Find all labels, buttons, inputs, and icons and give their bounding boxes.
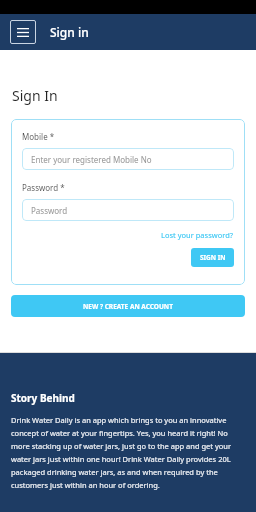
staticText: Enter your registered Mobile No bbox=[31, 154, 152, 165]
button[interactable]: Password bbox=[22, 199, 234, 221]
button[interactable]: Lost your password? bbox=[161, 230, 234, 240]
staticText: Drink Water Daily is an app which brings… bbox=[11, 415, 245, 490]
staticText: NEW ? CREATE AN ACCOUNT bbox=[83, 302, 173, 311]
button[interactable]: Enter your registered Mobile No bbox=[22, 148, 234, 170]
button[interactable]: SIGN IN bbox=[191, 248, 234, 267]
staticText: Sign in bbox=[50, 24, 89, 40]
staticText: Story Behind bbox=[11, 391, 75, 405]
staticText: Password * bbox=[22, 182, 65, 193]
staticText: Password bbox=[31, 205, 68, 216]
staticText: SIGN IN bbox=[200, 253, 226, 262]
button[interactable]: NEW ? CREATE AN ACCOUNT bbox=[11, 295, 245, 317]
staticText: Lost your password? bbox=[161, 230, 234, 240]
staticText: Mobile * bbox=[22, 131, 55, 142]
staticText: Sign In bbox=[12, 86, 58, 105]
button[interactable]: Open navigation menu bbox=[10, 20, 36, 44]
